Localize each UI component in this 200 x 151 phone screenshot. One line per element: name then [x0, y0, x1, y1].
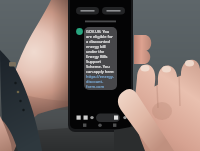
button[interactable]: Home	[96, 122, 105, 130]
button[interactable]: GOV.UK: You are eligible for a discounte…	[84, 27, 117, 90]
staticText: GOV.UK: You are eligible for a discounte…	[86, 29, 116, 89]
button[interactable]: Block number	[76, 7, 99, 15]
button[interactable]: Send	[113, 115, 120, 122]
button[interactable]: Recent apps	[81, 122, 90, 130]
button[interactable]: Back	[111, 122, 120, 130]
button[interactable]: Report junk	[102, 7, 125, 15]
button[interactable]: Text message	[96, 114, 120, 123]
